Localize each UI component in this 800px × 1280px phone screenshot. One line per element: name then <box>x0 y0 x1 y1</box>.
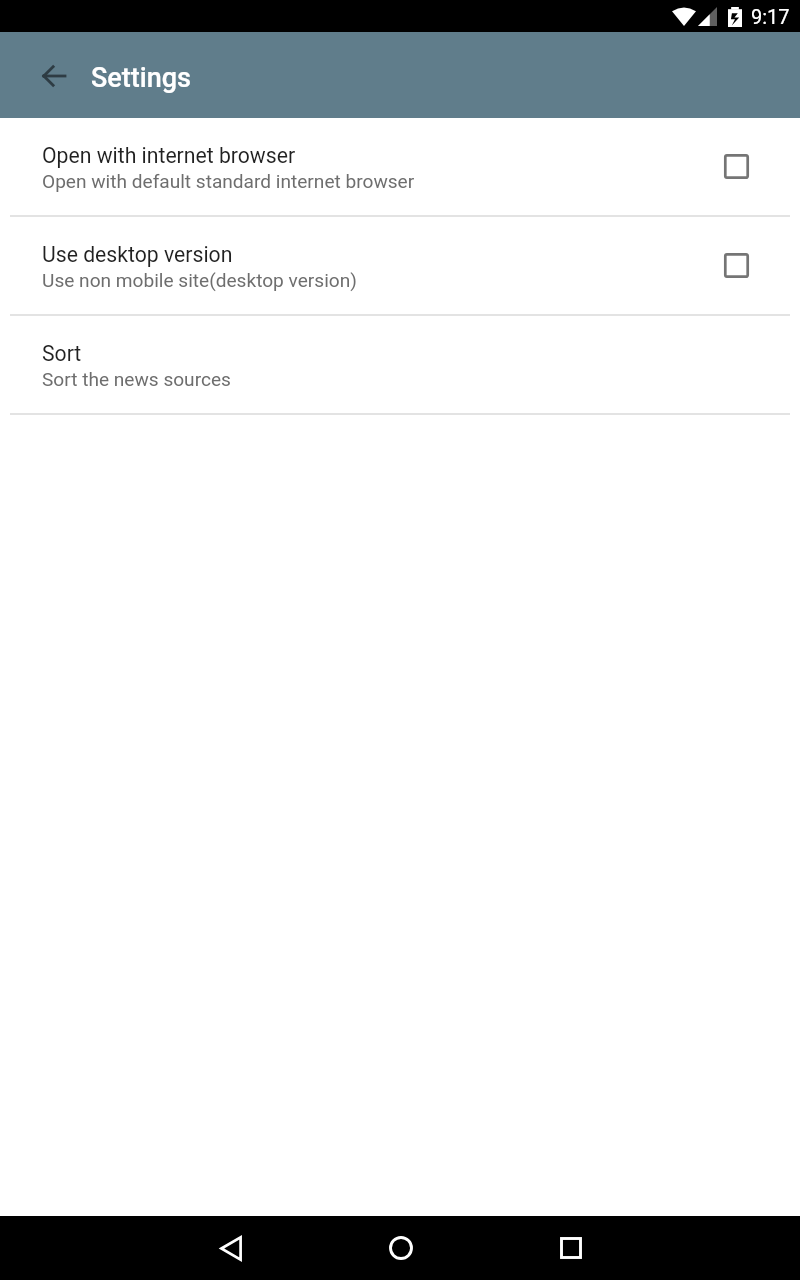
button[interactable]: Navigate up <box>32 54 76 98</box>
staticText: Use non mobile site(desktop version) <box>42 269 357 291</box>
staticText: Sort the news sources <box>42 368 231 390</box>
button[interactable]: Back <box>207 1224 255 1272</box>
button[interactable]: Open with internet browser <box>724 154 749 179</box>
staticText: Open with default standard internet brow… <box>42 170 415 192</box>
button[interactable]: Recent apps <box>547 1224 595 1272</box>
button[interactable]: Home <box>377 1224 425 1272</box>
button[interactable]: Sort <box>0 316 800 415</box>
staticText: Settings <box>91 62 191 94</box>
staticText: 9:17 <box>751 5 790 28</box>
staticText: Use desktop version <box>42 242 233 267</box>
staticText: Sort <box>42 341 82 366</box>
staticText: Open with internet browser <box>42 143 296 168</box>
button[interactable]: Use desktop version <box>724 253 749 278</box>
button[interactable]: Use desktop version <box>0 217 800 316</box>
button[interactable]: Open with internet browser <box>0 118 800 217</box>
